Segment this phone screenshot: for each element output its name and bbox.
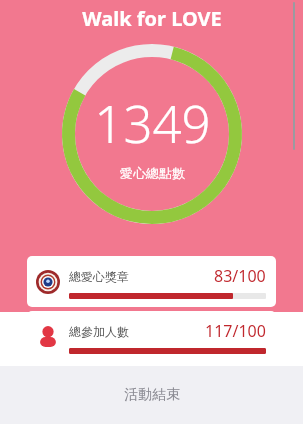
button[interactable]: 參加人數 [27,311,276,362]
other: 愛心獎章 [36,270,60,294]
staticText: 愛心總點數 [120,165,185,181]
button[interactable]: 活動結束 [0,366,303,424]
staticText: 117/100 [205,320,266,342]
other: 參加人數 [36,325,60,349]
staticText: 1349 [94,88,211,157]
staticText: 總參加人數 [69,324,129,339]
staticText: 總愛心獎章 [69,269,129,284]
button[interactable]: 愛心獎章 [27,256,276,307]
staticText: 活動結束 [124,386,180,404]
staticText: Walk for LOVE [82,5,222,32]
staticText: 83/100 [214,265,266,287]
